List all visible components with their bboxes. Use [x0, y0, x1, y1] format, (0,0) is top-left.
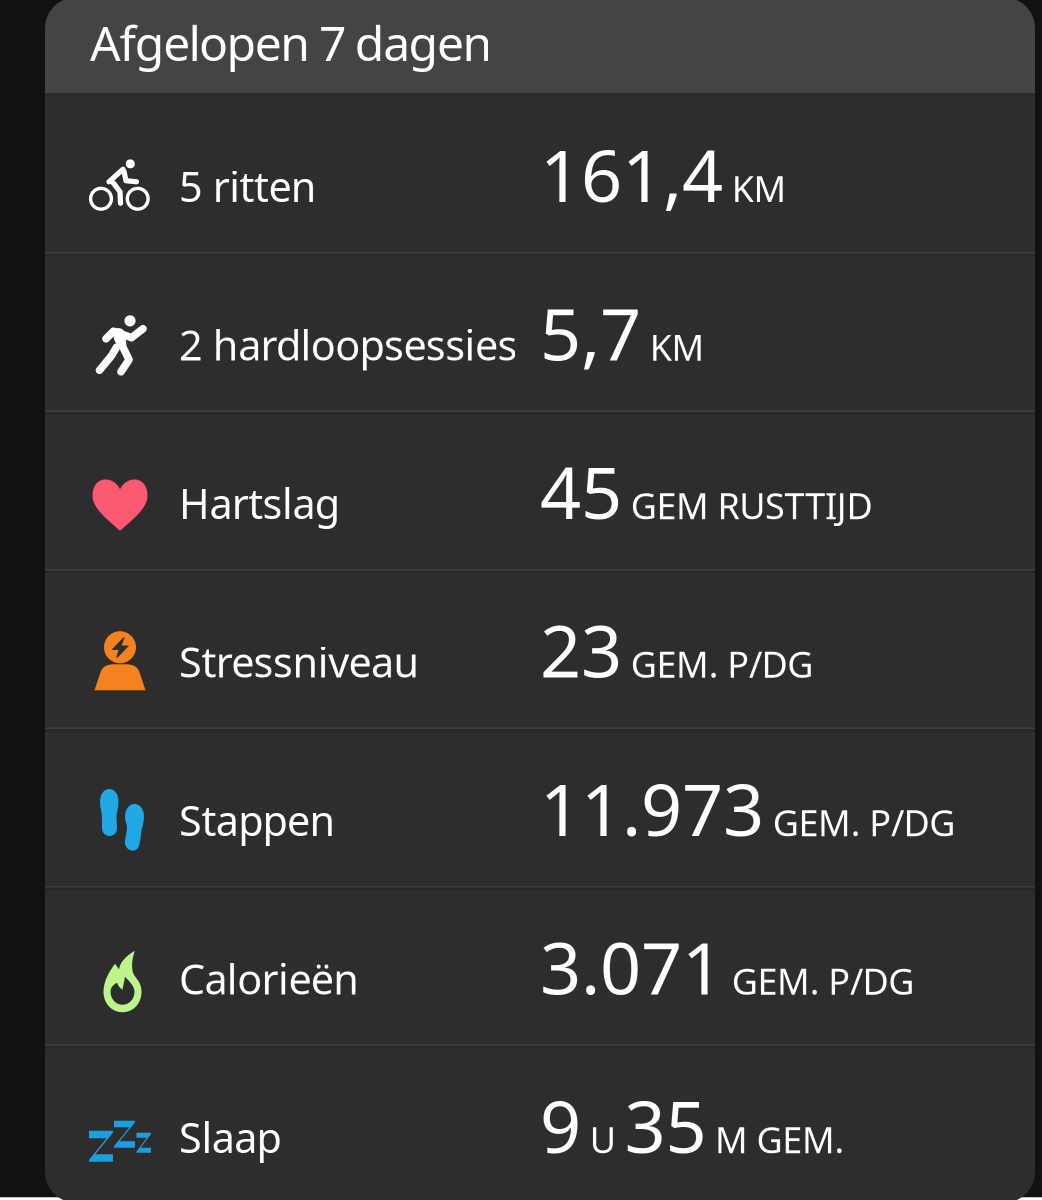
staticText: KM	[641, 323, 704, 371]
staticText: U	[581, 1115, 624, 1163]
staticText: 161,4	[540, 126, 723, 222]
staticText: 9	[540, 1077, 581, 1173]
staticText: 35	[624, 1077, 706, 1173]
button[interactable]: Hartslag	[45, 410, 1035, 569]
staticText: Slaap	[179, 1110, 282, 1164]
staticText: Hartslag	[179, 476, 340, 530]
staticText: GEM RUSTTIJD	[622, 481, 872, 529]
staticText: M GEM.	[706, 1115, 845, 1163]
button[interactable]: Slaap	[45, 1044, 1035, 1200]
staticText: GEM. P/DG	[764, 798, 955, 846]
staticText: KM	[723, 164, 786, 212]
button[interactable]: Stressniveau	[45, 569, 1035, 727]
button[interactable]: Stappen	[45, 727, 1035, 886]
staticText: 5 ritten	[179, 159, 317, 213]
staticText: 2 hardloopsessies	[179, 317, 517, 372]
staticText: 11.973	[540, 760, 764, 856]
button[interactable]: 5 ritten	[45, 93, 1035, 252]
staticText: 45	[540, 443, 622, 539]
staticText: 5,7	[540, 285, 641, 380]
staticText: Stressniveau	[179, 634, 419, 689]
staticText: Calorieën	[179, 951, 359, 1006]
staticText: GEM. P/DG	[723, 957, 914, 1005]
staticText: GEM. P/DG	[622, 640, 813, 688]
button[interactable]: 2 hardloopsessies	[45, 252, 1035, 410]
staticText: Afgelopen 7 dagen	[90, 11, 492, 74]
staticText: 23	[540, 602, 622, 697]
staticText: 3.071	[540, 919, 723, 1014]
staticText: Stappen	[179, 793, 335, 847]
button[interactable]: Calorieën	[45, 886, 1035, 1044]
